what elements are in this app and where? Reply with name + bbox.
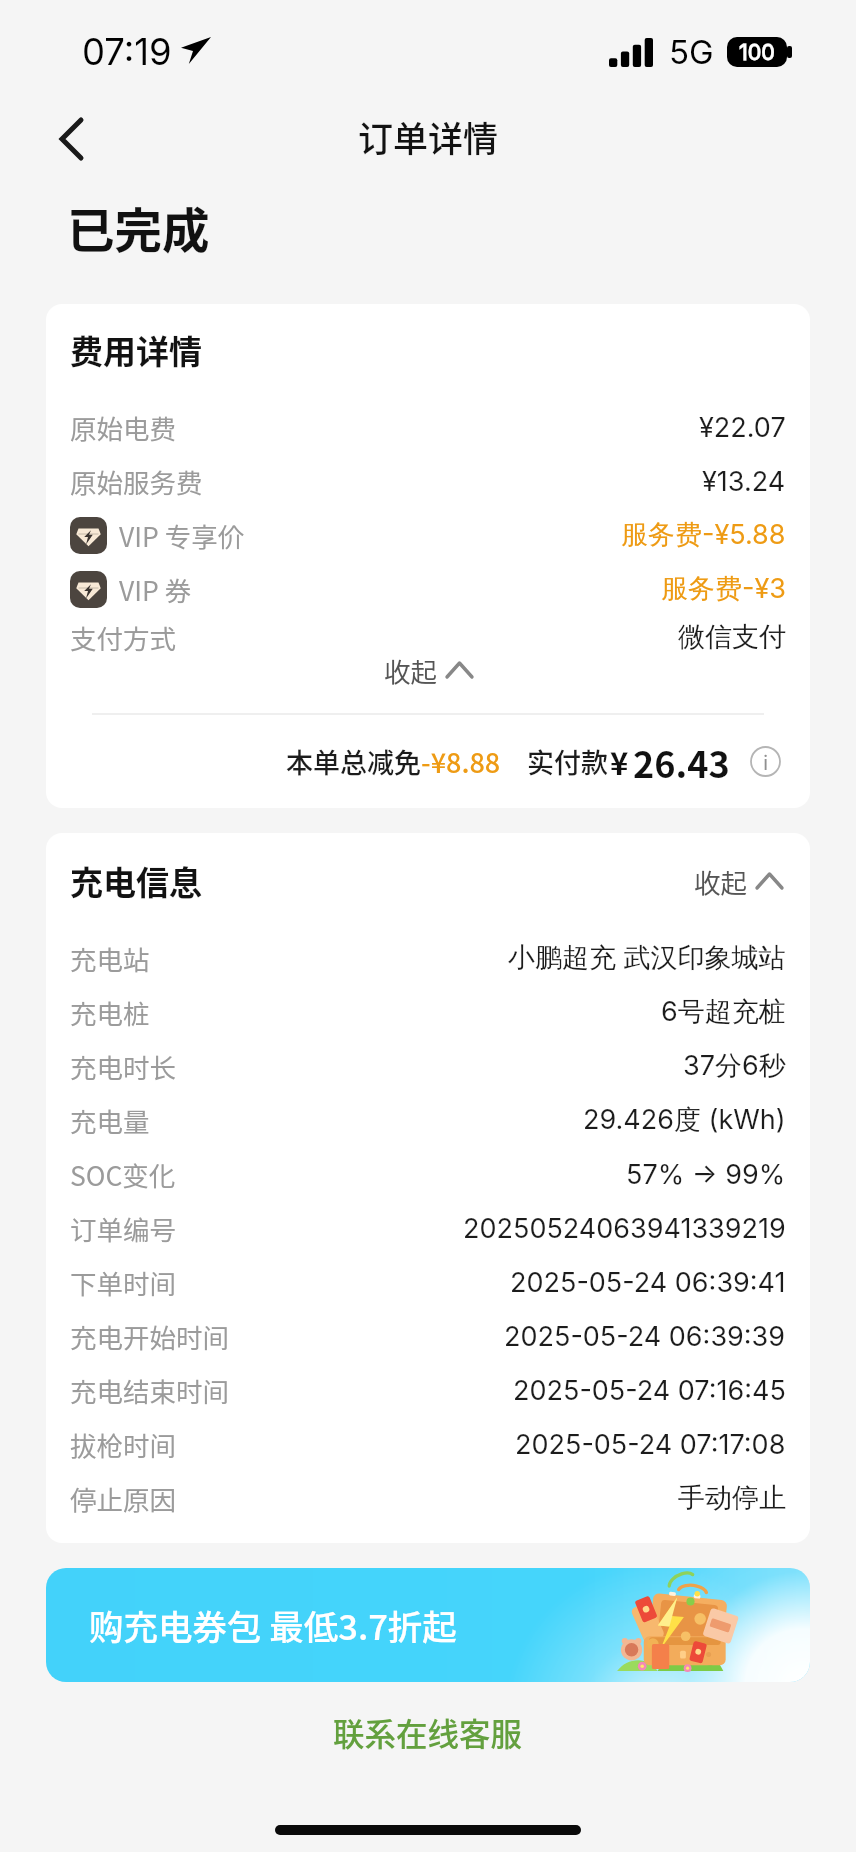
staticText: 服务费-¥5.88 (621, 518, 786, 552)
staticText: 拔枪时间 (70, 1425, 176, 1463)
staticText: 费用详情 (70, 326, 202, 374)
staticText: 购充电券包 最低3.7折起 (89, 1600, 457, 1650)
staticText: 支付方式 (70, 618, 176, 656)
button[interactable]: Info (750, 746, 781, 777)
staticText: 充电桩 (70, 993, 150, 1031)
staticText: 充电信息 (70, 857, 202, 905)
staticText: 100 (739, 39, 775, 65)
button[interactable]: 收起 (690, 858, 786, 904)
staticText: 已完成 (67, 193, 210, 262)
staticText: 订单详情 (358, 111, 499, 162)
staticText: ¥22.07 (699, 411, 786, 444)
staticText: 本单总减免 (286, 742, 421, 781)
staticText: 充电量 (70, 1101, 150, 1139)
staticText: 充电开始时间 (70, 1317, 229, 1355)
staticText: 充电站 (70, 939, 150, 977)
staticText: 37分6秒 (683, 1049, 786, 1083)
staticText: SOC变化 (70, 1155, 176, 1193)
staticText: 充电时长 (70, 1047, 176, 1085)
staticText: VIP 券 (119, 570, 192, 608)
staticText: 6号超充桩 (661, 995, 786, 1029)
staticText: 2025-05-24 07:17:08 (515, 1428, 786, 1461)
staticText: 2025-05-24 06:39:39 (504, 1320, 786, 1353)
staticText: 5G (669, 32, 714, 72)
staticText: 2025-05-24 06:39:41 (510, 1266, 786, 1299)
staticText: 原始服务费 (70, 462, 203, 500)
staticText: 收起 (384, 651, 437, 689)
staticText: 20250524063941339219 (463, 1212, 786, 1245)
staticText: 服务费-¥3 (661, 572, 786, 606)
staticText: 实付款 (527, 742, 608, 781)
staticText: 07:19 (82, 30, 172, 74)
staticText: 收起 (694, 862, 747, 900)
staticText: 充电结束时间 (70, 1371, 229, 1409)
staticText: i (763, 748, 769, 776)
button[interactable]: 收起 (370, 643, 486, 697)
staticText: ¥ (610, 739, 629, 784)
staticText: 29.426度 (kWh) (583, 1103, 786, 1137)
staticText: -¥8.88 (421, 742, 501, 781)
staticText: 小鹏超充 武汉印象城站 (508, 941, 786, 975)
button[interactable]: Back (40, 108, 102, 170)
staticText: 下单时间 (70, 1263, 176, 1301)
staticText: 订单编号 (70, 1209, 176, 1247)
staticText: 微信支付 (678, 620, 786, 654)
staticText: 26.43 (633, 736, 730, 788)
staticText: 57% → 99% (626, 1158, 786, 1191)
staticText: ¥13.24 (702, 465, 786, 498)
staticText: 2025-05-24 07:16:45 (513, 1374, 786, 1407)
staticText: 手动停止 (678, 1481, 786, 1515)
button[interactable]: 购充电券包 最低3.7折起 (46, 1568, 810, 1682)
staticText: 原始电费 (70, 408, 176, 446)
button[interactable]: 联系在线客服 (309, 1703, 547, 1761)
staticText: 停止原因 (70, 1479, 176, 1517)
staticText: VIP 专享价 (119, 516, 245, 554)
